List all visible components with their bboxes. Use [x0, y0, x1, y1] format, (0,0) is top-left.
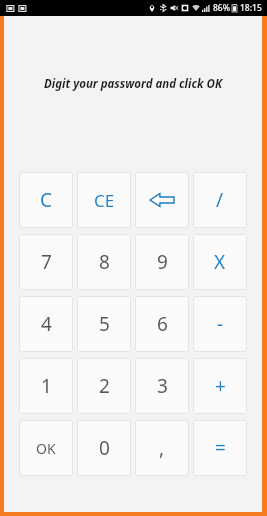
- button[interactable]: 9: [135, 234, 189, 290]
- staticText: 9: [157, 249, 168, 275]
- staticText: 0: [99, 435, 110, 461]
- staticText: C: [40, 187, 53, 213]
- staticText: 7: [41, 249, 52, 275]
- staticText: 86%: [213, 2, 230, 14]
- button[interactable]: ,: [135, 420, 189, 476]
- button[interactable]: 6: [135, 296, 189, 352]
- staticText: +: [215, 373, 226, 399]
- staticText: 8: [99, 249, 110, 275]
- staticText: OK: [36, 439, 56, 458]
- button[interactable]: 4: [19, 296, 73, 352]
- button[interactable]: Backspace: [135, 172, 189, 228]
- staticText: X: [214, 249, 226, 275]
- staticText: 2: [99, 373, 110, 399]
- staticText: CE: [94, 189, 115, 212]
- button[interactable]: CE: [77, 172, 131, 228]
- button[interactable]: 3: [135, 358, 189, 414]
- staticText: 1: [41, 373, 52, 399]
- staticText: 3: [157, 373, 168, 399]
- button[interactable]: 1: [19, 358, 73, 414]
- button[interactable]: 2: [77, 358, 131, 414]
- staticText: =: [215, 435, 226, 461]
- button[interactable]: OK: [19, 420, 73, 476]
- staticText: 5: [99, 311, 110, 337]
- button[interactable]: C: [19, 172, 73, 228]
- button[interactable]: 8: [77, 234, 131, 290]
- staticText: 6: [157, 311, 168, 337]
- button[interactable]: -: [193, 296, 247, 352]
- button[interactable]: +: [193, 358, 247, 414]
- staticText: 18:15: [240, 2, 262, 14]
- button[interactable]: =: [193, 420, 247, 476]
- button[interactable]: 5: [77, 296, 131, 352]
- staticText: 4: [41, 311, 52, 337]
- staticText: -: [217, 311, 224, 337]
- button[interactable]: X: [193, 234, 247, 290]
- staticText: /: [216, 187, 224, 213]
- staticText: Digit your password and click OK: [12, 76, 254, 92]
- button[interactable]: /: [193, 172, 247, 228]
- button[interactable]: 0: [77, 420, 131, 476]
- staticText: ,: [159, 435, 165, 461]
- button[interactable]: 7: [19, 234, 73, 290]
